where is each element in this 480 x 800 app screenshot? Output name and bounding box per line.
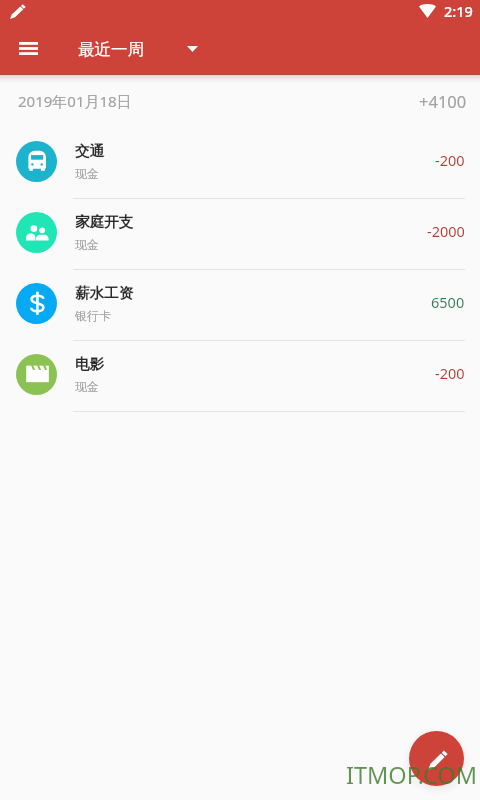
other: Edit notification [10,4,26,19]
staticText: 最近一周 [78,39,144,60]
button[interactable]: 电影 [0,341,480,412]
staticText: 现金 [75,166,99,181]
staticText: +4100 [419,90,467,112]
staticText: 现金 [75,237,99,252]
button[interactable]: 家庭开支 [0,199,480,270]
button[interactable]: Select period [174,33,210,65]
staticText: 家庭开支 [75,213,134,231]
staticText: 2019年01月18日 [18,91,132,111]
staticText: -200 [435,150,465,170]
staticText: 交通 [75,142,105,160]
staticText: 薪水工资 [75,284,134,302]
button[interactable]: 薪水工资 [0,270,480,341]
staticText: ITMOP.COM [346,759,478,791]
staticText: 6500 [431,292,465,312]
staticText: 电影 [75,355,105,373]
staticText: -2000 [427,221,465,241]
button[interactable]: Add record [409,731,464,786]
staticText: 银行卡 [75,308,111,323]
button[interactable]: Open navigation menu [4,24,52,72]
staticText: 现金 [75,379,99,394]
staticText: -200 [435,363,465,383]
button[interactable]: 交通 [0,128,480,199]
staticText: 2:19 [444,1,473,21]
